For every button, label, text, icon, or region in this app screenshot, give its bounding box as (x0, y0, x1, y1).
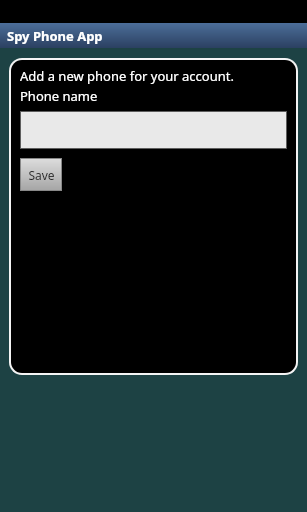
button[interactable]: Save (21, 159, 61, 190)
staticText: Save (28, 167, 55, 183)
staticText: Phone name (20, 87, 98, 105)
staticText: Spy Phone App (7, 27, 103, 45)
button[interactable]: Spy Phone App (0, 23, 307, 48)
staticText: Add a new phone for your account. (20, 67, 234, 85)
